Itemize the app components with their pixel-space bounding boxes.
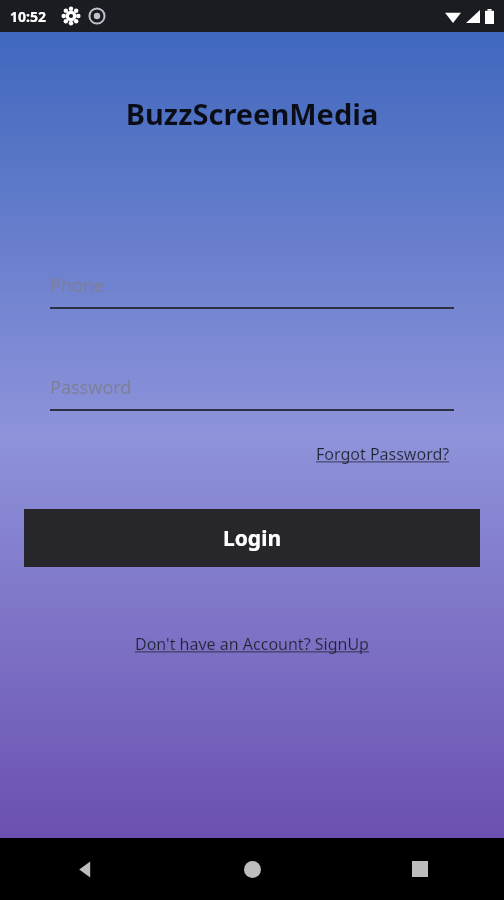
button[interactable]: Forgot Password? [312, 439, 454, 469]
button[interactable]: Password [50, 375, 454, 411]
staticText: 10:52 [10, 7, 46, 26]
staticText: Login [223, 524, 282, 553]
staticText: Password [50, 375, 132, 400]
staticText: BuzzScreenMedia [0, 94, 504, 133]
button[interactable]: Home [168, 838, 336, 900]
button[interactable]: Back [0, 838, 168, 900]
button[interactable]: Login [24, 509, 480, 567]
button[interactable]: Recents [336, 838, 504, 900]
button[interactable]: Don't have an Account? SignUp [131, 629, 373, 659]
button[interactable]: Phone [50, 273, 454, 309]
staticText: Phone [50, 273, 105, 298]
